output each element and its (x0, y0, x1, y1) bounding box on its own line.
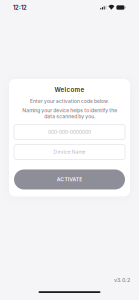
staticText: 12:12 (13, 4, 27, 11)
staticText: Naming your device helps to identify the… (22, 107, 117, 119)
button[interactable]: 000-000-0000000 (14, 124, 125, 139)
staticText: Welcome (54, 86, 84, 93)
staticText: Device Name (53, 149, 85, 155)
staticText: ACTIVATE (57, 176, 82, 182)
staticText: Enter your activation code below. (30, 98, 109, 104)
staticText: v3.0.2 (114, 277, 130, 283)
button[interactable]: ACTIVATE (14, 169, 125, 189)
button[interactable]: Device Name (14, 144, 125, 159)
staticText: 000-000-0000000 (48, 129, 91, 135)
